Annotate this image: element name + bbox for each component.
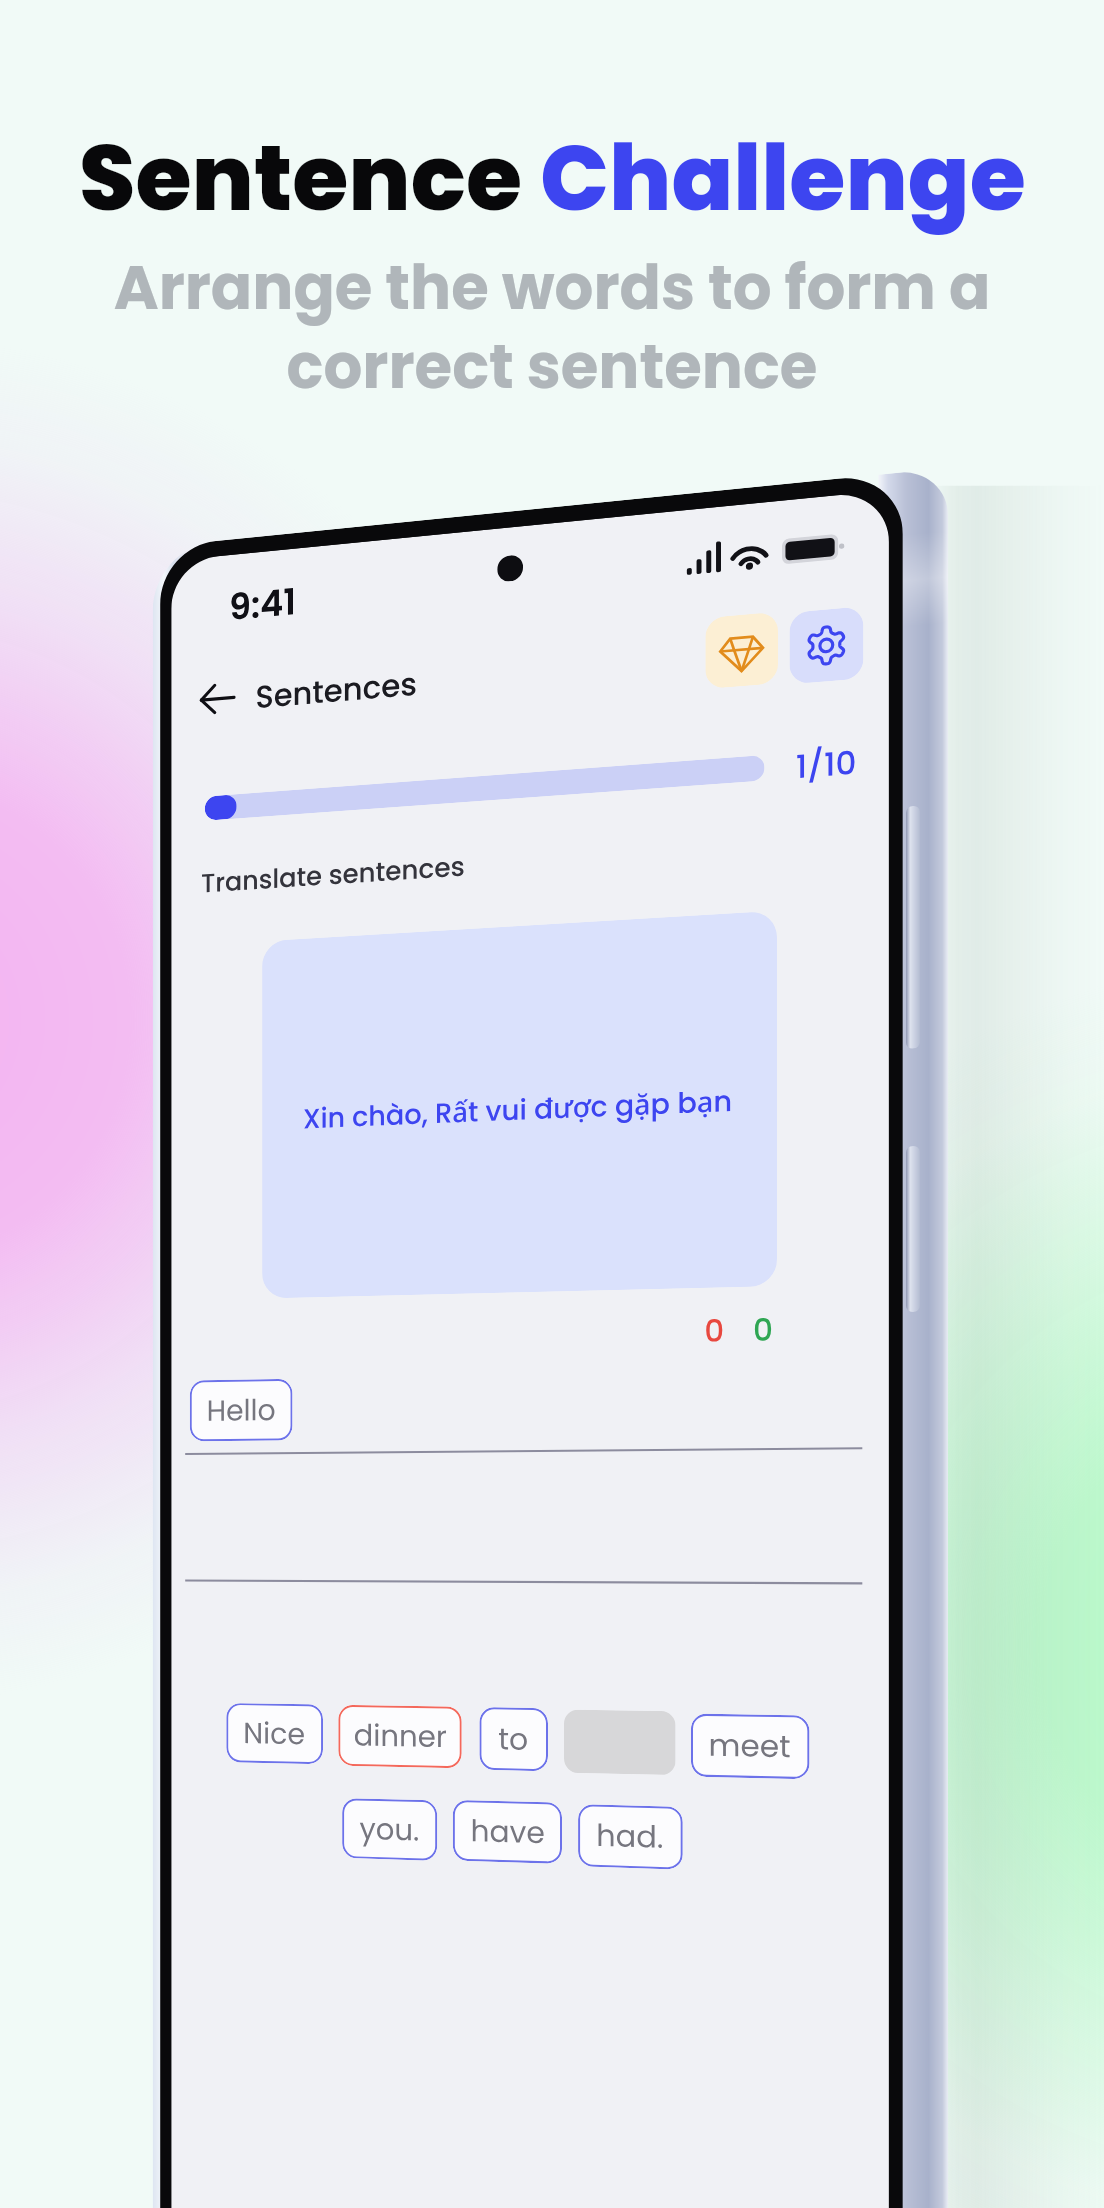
button[interactable]: Premium bbox=[705, 612, 778, 689]
button[interactable]: Empty slot bbox=[564, 1709, 675, 1775]
button[interactable]: to bbox=[479, 1707, 548, 1771]
staticText: 1/10 bbox=[796, 740, 857, 788]
button[interactable]: meet bbox=[691, 1714, 809, 1779]
staticText: had. bbox=[596, 1815, 664, 1859]
staticText: Challenge bbox=[540, 114, 1026, 241]
button[interactable]: had. bbox=[578, 1804, 683, 1870]
staticText: Nice bbox=[243, 1713, 306, 1755]
button[interactable]: dinner bbox=[338, 1705, 462, 1768]
staticText: meet bbox=[708, 1724, 792, 1769]
staticText: dinner bbox=[354, 1715, 447, 1758]
staticText: Translate sentences bbox=[201, 848, 466, 902]
button[interactable]: Hello bbox=[190, 1379, 292, 1441]
staticText: Sentences bbox=[255, 661, 418, 719]
button[interactable]: Nice bbox=[226, 1703, 323, 1764]
staticText: to bbox=[498, 1718, 529, 1761]
button[interactable]: you. bbox=[342, 1798, 437, 1861]
button[interactable]: Back bbox=[190, 668, 244, 729]
staticText: 0 bbox=[704, 1310, 725, 1353]
staticText: Hello bbox=[207, 1390, 276, 1431]
button[interactable]: Xin chào, Rất vui được gặp bạn bbox=[262, 911, 777, 1299]
staticText: Arrange the words to form a correct sent… bbox=[0, 245, 1104, 410]
button[interactable]: Settings bbox=[789, 606, 863, 684]
button[interactable]: have bbox=[453, 1800, 562, 1864]
staticText: you. bbox=[359, 1808, 420, 1851]
staticText: 9:41 bbox=[229, 576, 296, 633]
staticText: 0 bbox=[753, 1309, 774, 1352]
staticText: Xin chào, Rất vui được gặp bạn bbox=[303, 1080, 732, 1138]
staticText: Sentence bbox=[79, 114, 540, 241]
staticText: have bbox=[471, 1810, 545, 1854]
